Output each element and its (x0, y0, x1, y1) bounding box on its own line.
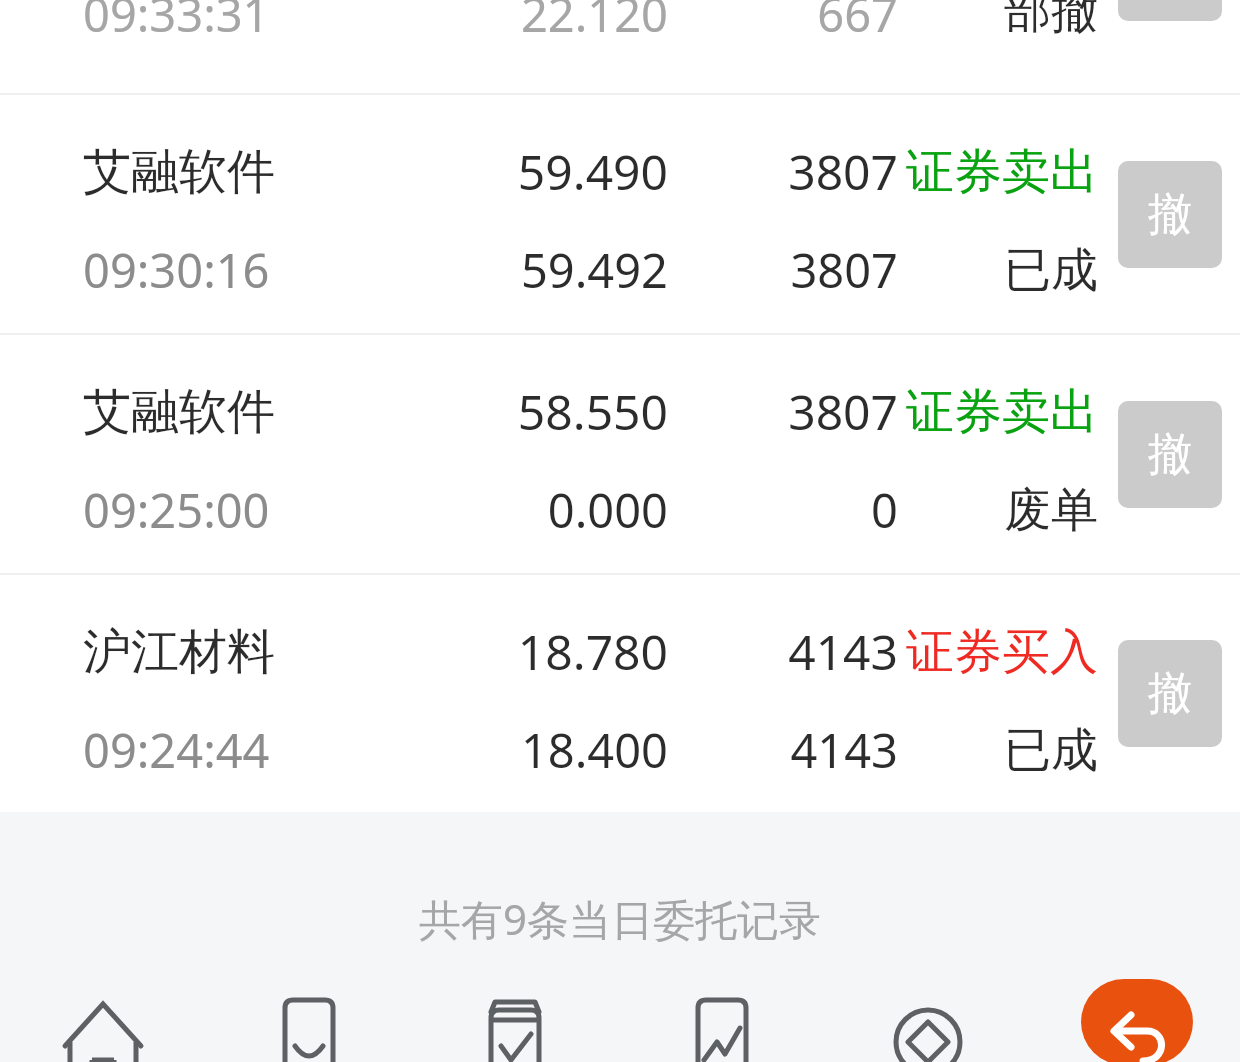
staticText: 3807 (668, 139, 898, 204)
staticText: 4143 (668, 619, 898, 684)
button[interactable]: 撤单 (1118, 401, 1222, 508)
staticText: 废单 (898, 481, 1098, 540)
staticText: 艾融软件 (83, 142, 413, 202)
staticText: 0.000 (413, 478, 668, 542)
staticText: 09:24:44 (83, 718, 413, 782)
staticText: 667 (668, 0, 898, 46)
button[interactable]: 艾融软件 (0, 95, 1240, 333)
button[interactable]: 艾融软件 (0, 335, 1240, 573)
staticText: 沪江材料 (83, 622, 413, 682)
staticText: 09:30:16 (83, 238, 413, 302)
button[interactable]: 撤单 (1118, 0, 1222, 21)
staticText: 3807 (668, 238, 898, 302)
staticText: 09:33:31 (83, 0, 413, 46)
staticText: 22.120 (413, 0, 668, 46)
button[interactable]: 撤单 (1118, 161, 1222, 268)
staticText: 证券卖出 (898, 382, 1098, 442)
staticText: 18.780 (413, 619, 668, 684)
staticText: 撤 (1148, 187, 1192, 242)
staticText: 3807 (668, 379, 898, 444)
button[interactable]: 持仓 (229, 976, 389, 1062)
staticText: 59.490 (413, 139, 668, 204)
staticText: 艾融软件 (83, 382, 413, 442)
staticText: 09:25:00 (83, 478, 413, 542)
button[interactable]: 行情 (642, 976, 802, 1062)
staticText: 撤 (1148, 427, 1192, 482)
button[interactable]: 首页 (23, 976, 183, 1062)
staticText: 证券买入 (898, 622, 1098, 682)
button[interactable]: 返回 (1081, 979, 1193, 1062)
button[interactable]: 沪江材料 (0, 575, 1240, 812)
button[interactable]: 委托 (435, 976, 595, 1062)
staticText: 4143 (668, 718, 898, 782)
button[interactable]: 更多 (848, 976, 1008, 1062)
staticText: 撤 (1148, 666, 1192, 721)
staticText: 58.550 (413, 379, 668, 444)
staticText: 部撤 (898, 0, 1098, 41)
staticText: 共有9条当日委托记录 (419, 890, 822, 947)
staticText: 已成 (898, 721, 1098, 780)
staticText: 已成 (898, 241, 1098, 300)
staticText: 59.492 (413, 238, 668, 302)
staticText: 证券卖出 (898, 142, 1098, 202)
button[interactable]: 09:33:31 (0, 0, 1240, 93)
staticText: 0 (668, 478, 898, 542)
staticText: 18.400 (413, 718, 668, 782)
button[interactable]: 撤单 (1118, 640, 1222, 747)
